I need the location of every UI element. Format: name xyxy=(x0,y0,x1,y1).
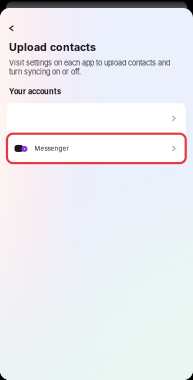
staticText: Visit settings on each app to upload con… xyxy=(9,58,170,76)
button[interactable]: Account xyxy=(7,103,186,134)
staticText: Messenger xyxy=(34,145,68,152)
staticText: Upload contacts xyxy=(9,41,96,53)
button[interactable]: Back xyxy=(0,19,25,38)
button[interactable]: Messenger xyxy=(7,134,186,163)
staticText: Your accounts xyxy=(9,87,61,96)
